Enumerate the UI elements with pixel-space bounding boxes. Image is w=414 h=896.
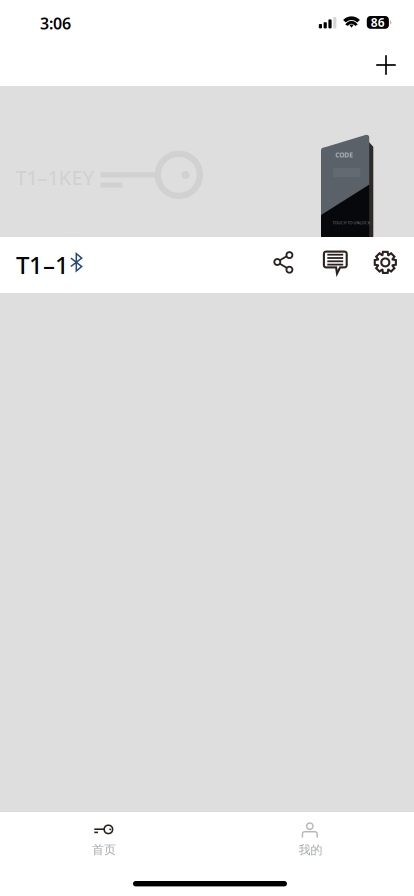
button[interactable]: T1–1 [0,237,414,293]
staticText: 86 [371,14,385,30]
staticText: CODE [335,150,353,159]
staticText: 我的 [298,843,322,857]
button[interactable]: 我的 [0,811,414,860]
staticText: TOUCH TO UNLOCK [332,220,369,225]
button[interactable]: Add device [368,47,404,83]
staticText: T1–1KEY [16,164,95,191]
staticText: 3:06 [40,13,71,34]
button[interactable]: 首页 [0,811,207,860]
staticText: T1–1 [16,249,69,281]
staticText: 首页 [92,842,116,857]
